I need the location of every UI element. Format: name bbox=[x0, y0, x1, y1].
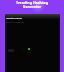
staticText: Discover trending tags bbox=[6, 21, 24, 23]
staticText: Trending Hashtag Generator bbox=[0, 0, 64, 9]
staticText: Hashtag Genius bbox=[6, 17, 23, 20]
